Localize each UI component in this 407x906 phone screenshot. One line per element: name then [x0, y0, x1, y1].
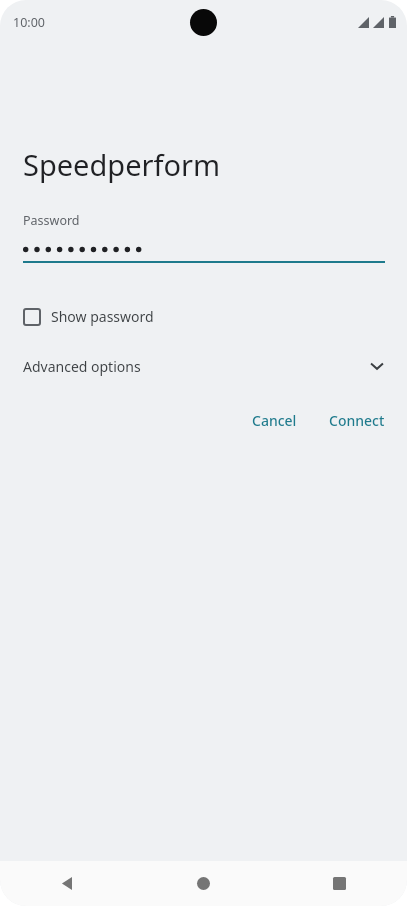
other: Expand advanced options [367, 356, 387, 376]
staticText: Cancel [252, 411, 297, 430]
button[interactable]: Advanced options [0, 356, 407, 376]
staticText: Speedperform [23, 145, 221, 184]
staticText: Advanced options [23, 357, 141, 376]
button[interactable]: Cancel [244, 405, 305, 436]
staticText: 10:00 [13, 14, 45, 31]
button[interactable]: Show password [23, 307, 154, 326]
button[interactable]: Recent apps [271, 861, 407, 906]
button[interactable]: Connect [321, 405, 393, 436]
staticText: Connect [329, 411, 385, 430]
button[interactable]: Home [135, 861, 271, 906]
staticText: Password [23, 212, 80, 229]
button[interactable]: Back [0, 861, 135, 906]
staticText: Show password [51, 307, 154, 326]
